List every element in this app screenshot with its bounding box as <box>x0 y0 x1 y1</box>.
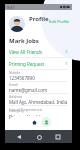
button[interactable]: Back <box>14 132 24 142</box>
staticText: Mall Ajp, Ahmedabad, India <box>9 99 68 105</box>
staticText: Printing Request <box>9 61 45 67</box>
staticText: Profile <box>29 15 49 23</box>
button[interactable]: Mobile <box>5 70 72 81</box>
staticText: List of Experience <box>9 107 43 112</box>
staticText: Printer Health <box>9 114 42 121</box>
button[interactable]: View All Friends <box>5 46 72 57</box>
button[interactable]: Address <box>5 94 72 105</box>
button[interactable]: Printing Request <box>5 58 72 69</box>
staticText: 9:41 <box>7 5 15 10</box>
button[interactable]: Profile <box>41 117 51 127</box>
button[interactable]: Home <box>29 117 39 127</box>
staticText: Address <box>9 94 23 99</box>
staticText: Email <box>9 82 18 87</box>
staticText: View All Friends <box>9 49 42 55</box>
button[interactable]: Home <box>34 132 44 142</box>
button[interactable]: Email <box>5 82 72 93</box>
staticText: Category <box>9 108 24 113</box>
staticText: Edit Profile <box>49 19 70 24</box>
staticText: name@gmail.com <box>9 87 48 93</box>
staticText: Mobile <box>9 70 21 75</box>
button[interactable]: Edit Profile <box>47 18 72 25</box>
staticText: 1234567890 <box>9 75 35 81</box>
button[interactable]: Recent apps <box>53 132 63 142</box>
staticText: Mark Jobs <box>9 37 39 45</box>
